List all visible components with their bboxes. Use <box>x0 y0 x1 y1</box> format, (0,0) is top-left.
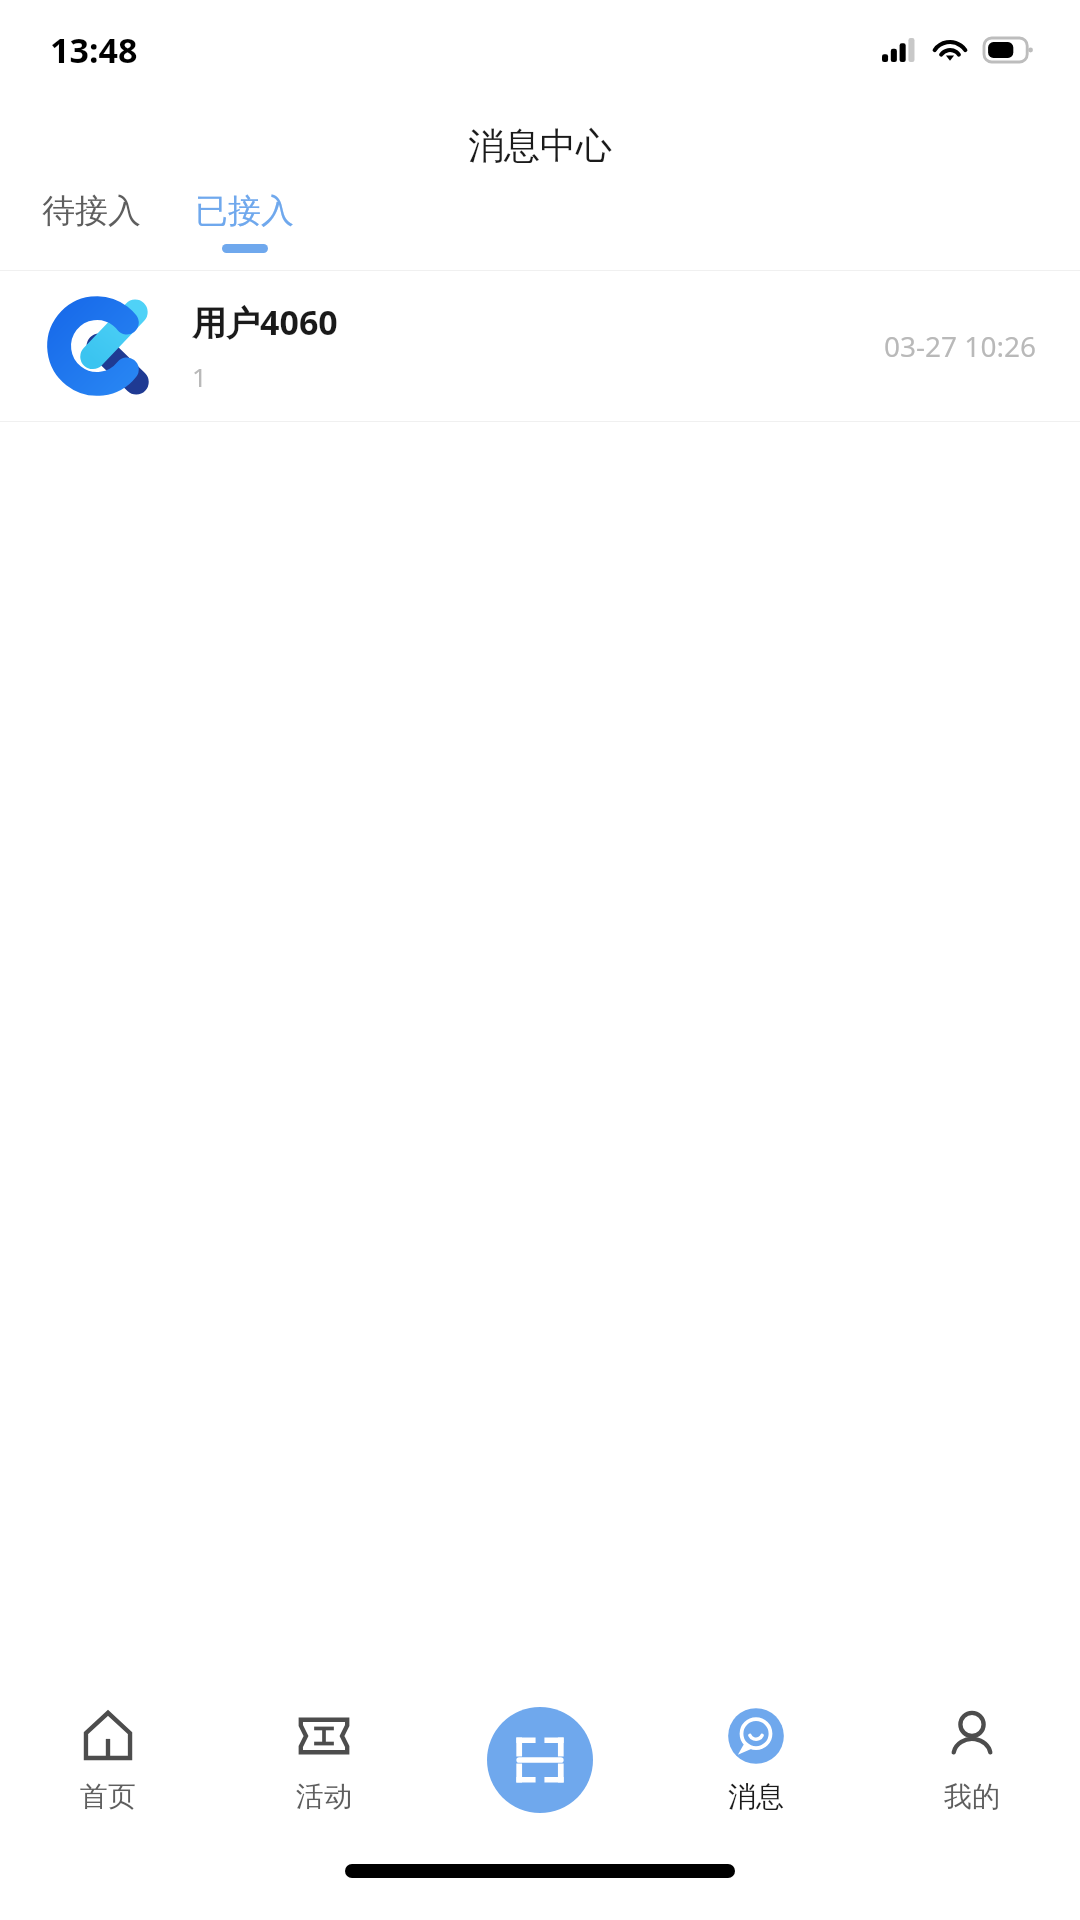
button[interactable]: 活动 <box>216 1670 432 1850</box>
button[interactable]: Scan <box>487 1707 593 1813</box>
button[interactable]: 我的 <box>864 1670 1080 1850</box>
staticText: 1 <box>192 359 207 394</box>
staticText: 待接入 <box>42 190 141 232</box>
staticText: 已接入 <box>195 190 294 232</box>
button[interactable]: 消息 <box>648 1670 864 1850</box>
staticText: 消息中心 <box>468 123 612 168</box>
staticText: 消息 <box>728 1779 784 1814</box>
staticText: 活动 <box>296 1779 352 1814</box>
button[interactable]: 已接入 <box>189 190 300 253</box>
button[interactable]: 用户4060 <box>0 271 1080 421</box>
staticText: 03-27 10:26 <box>884 327 1036 365</box>
staticText: 我的 <box>944 1779 1000 1814</box>
button[interactable]: 首页 <box>0 1670 216 1850</box>
staticText: 首页 <box>80 1779 136 1814</box>
button[interactable]: 待接入 <box>36 190 147 244</box>
staticText: 用户4060 <box>192 299 338 345</box>
staticText: 13:48 <box>50 27 138 73</box>
